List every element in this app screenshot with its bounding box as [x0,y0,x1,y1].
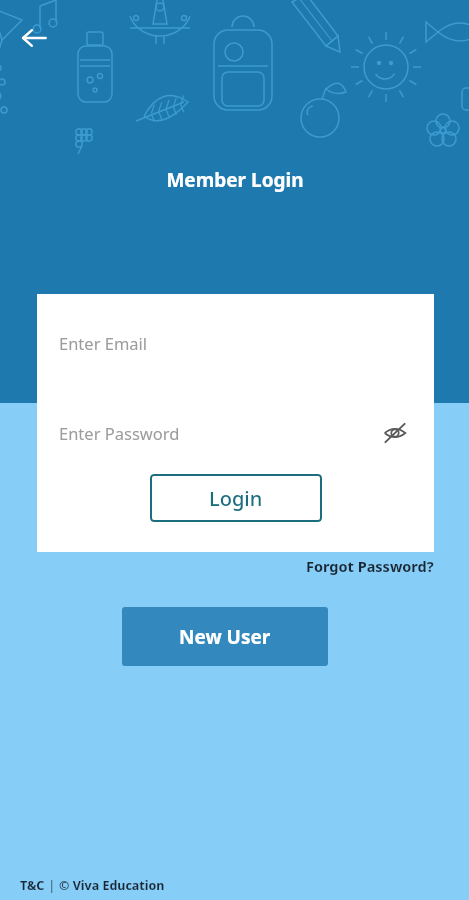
staticText: | [45,877,59,894]
button[interactable]: Back [12,16,56,60]
staticText: Login [209,485,263,512]
staticText: New User [179,624,271,650]
staticText: Member Login [166,167,304,193]
button[interactable]: Forgot Password? [306,556,434,576]
staticText: Forgot Password? [306,556,434,576]
staticText: T&C [20,877,45,894]
button[interactable]: Enter Password [37,410,434,456]
staticText: Enter Password [59,422,180,444]
button[interactable]: Show password [380,418,410,448]
button[interactable]: Login [150,474,322,522]
button[interactable]: Enter Email [37,320,434,366]
button[interactable]: New User [122,607,328,666]
staticText: Enter Email [59,332,148,354]
staticText: © Viva Education [59,877,165,894]
button[interactable]: T&C [20,877,45,894]
